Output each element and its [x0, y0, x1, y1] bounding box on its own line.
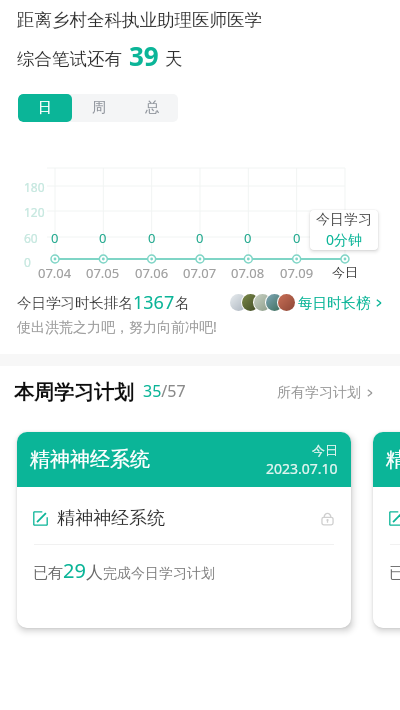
staticText: 每日时长榜: [298, 294, 371, 312]
staticText: 0: [196, 229, 204, 247]
staticText: 1367: [133, 290, 175, 315]
staticText: 39: [129, 38, 159, 73]
staticText: 精神神经系统: [57, 507, 165, 530]
button[interactable]: 所有学习计划: [277, 384, 375, 402]
button[interactable]: 精神神经系统: [373, 432, 400, 628]
staticText: 120: [24, 204, 45, 220]
staticText: 07.04: [38, 264, 72, 282]
staticText: 2023.07.10: [266, 459, 338, 478]
staticText: 精神神经系统: [386, 447, 400, 472]
staticText: 天: [165, 48, 183, 70]
staticText: 使出洪荒之力吧，努力向前冲吧!: [17, 317, 217, 336]
staticText: 所有学习计划: [277, 384, 361, 402]
staticText: 07.06: [135, 264, 169, 282]
staticText: 本周学习计划: [14, 380, 134, 405]
staticText: 180: [24, 179, 45, 195]
staticText: 0: [24, 254, 31, 270]
button[interactable]: 周: [72, 94, 125, 122]
staticText: 0: [244, 229, 252, 247]
staticText: 今日: [332, 264, 358, 280]
staticText: 今日: [312, 442, 338, 458]
staticText: 0: [293, 229, 301, 247]
staticText: 07.07: [183, 264, 217, 282]
other: Edit: [389, 511, 400, 526]
staticText: 精神神经系统: [30, 447, 150, 472]
staticText: 周: [92, 99, 106, 117]
staticText: 0: [51, 229, 59, 247]
button[interactable]: 日: [18, 94, 72, 122]
button[interactable]: 精神神经系统: [17, 432, 351, 628]
staticText: 距离乡村全科执业助理医师医学: [17, 9, 262, 31]
staticText: 07.05: [86, 264, 120, 282]
staticText: 0分钟: [326, 230, 363, 249]
other: Edit: [33, 511, 48, 526]
staticText: 07.08: [231, 264, 265, 282]
staticText: 日: [38, 99, 52, 117]
button[interactable]: 总: [125, 94, 178, 122]
staticText: 今日学习时长排名: [17, 294, 133, 312]
staticText: 综合笔试还有: [17, 48, 122, 70]
staticText: 0: [148, 229, 156, 247]
staticText: 0: [99, 229, 107, 247]
staticText: 名: [175, 294, 190, 312]
staticText: 60: [24, 230, 38, 246]
staticText: 今日学习: [316, 211, 372, 229]
other: Locked: [320, 511, 335, 526]
staticText: 已有29人完成今日学习计划: [389, 557, 400, 584]
staticText: 35/57: [143, 380, 186, 402]
staticText: 已有29人完成今日学习计划: [33, 557, 215, 584]
staticText: 总: [145, 99, 159, 117]
button[interactable]: 每日时长榜: [229, 293, 384, 313]
staticText: 07.09: [280, 264, 314, 282]
